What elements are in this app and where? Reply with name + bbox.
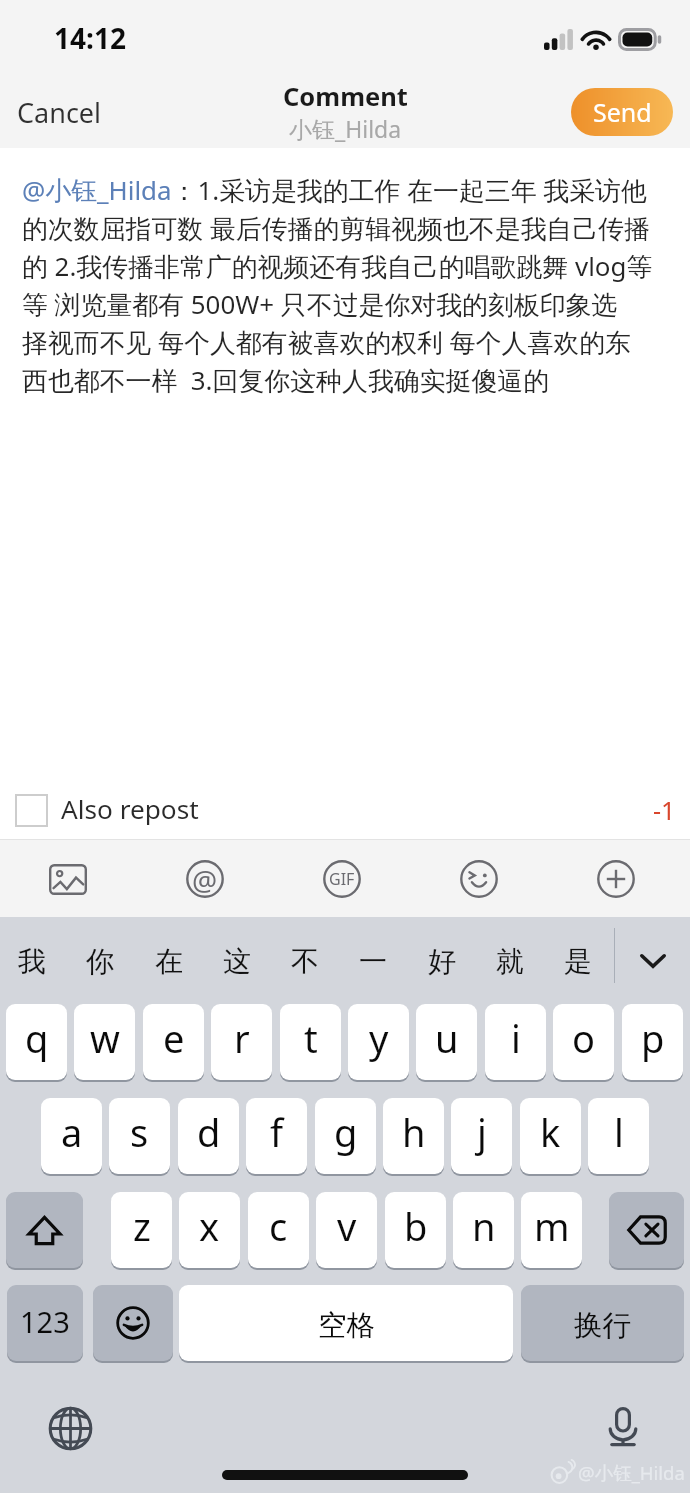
button[interactable]: 我 [4, 917, 59, 1004]
button[interactable]: 123 [7, 1285, 83, 1361]
button[interactable]: u [416, 1004, 477, 1080]
staticText: u [435, 1012, 459, 1064]
button[interactable]: q [6, 1004, 67, 1080]
staticText: 不 [291, 944, 319, 979]
staticText: 空格 [318, 1308, 375, 1344]
staticText: a [61, 1106, 83, 1158]
other: Emoji keyboard [93, 1285, 173, 1361]
button[interactable]: p [622, 1004, 683, 1080]
button[interactable]: k [520, 1098, 581, 1174]
staticText: h [402, 1106, 426, 1158]
staticText: q [25, 1012, 49, 1064]
button[interactable]: 空格 [179, 1285, 513, 1361]
staticText: 就 [496, 944, 524, 979]
button[interactable]: i [485, 1004, 546, 1080]
button[interactable] [609, 1192, 684, 1268]
staticText: o [572, 1012, 595, 1064]
staticText: r [234, 1012, 250, 1064]
staticText: 好 [428, 944, 456, 979]
staticText: -1 [653, 793, 676, 827]
staticText: 小钰_Hilda [289, 113, 402, 144]
button[interactable]: More [580, 860, 652, 898]
button[interactable]: d [178, 1098, 239, 1174]
button[interactable]: 在 [141, 917, 196, 1004]
button[interactable]: Mention [169, 860, 241, 898]
button[interactable]: 这 [209, 917, 264, 1004]
button[interactable]: c [248, 1192, 309, 1268]
staticText: 14:12 [54, 19, 126, 57]
button[interactable]: b [385, 1192, 446, 1268]
staticText: s [130, 1106, 149, 1158]
button[interactable]: m [521, 1192, 582, 1268]
button[interactable]: l [588, 1098, 649, 1174]
staticText: e [163, 1012, 185, 1064]
button[interactable]: Also repost [0, 784, 209, 836]
staticText: Also repost [61, 791, 199, 827]
button[interactable] [93, 1285, 173, 1361]
staticText: z [133, 1200, 151, 1252]
button[interactable]: Send [571, 88, 673, 136]
staticText: g [334, 1106, 358, 1158]
button[interactable]: GIF [306, 860, 378, 898]
button[interactable] [6, 1192, 83, 1268]
staticText: @小钰_Hilda：1.采访是我的工作 在一起三年 我采访他 的次数屈指可数 最… [22, 172, 686, 397]
button[interactable]: Change keyboard [42, 1400, 98, 1456]
staticText: j [477, 1106, 487, 1158]
button[interactable]: a [41, 1098, 102, 1174]
button[interactable]: 是 [550, 917, 605, 1004]
button[interactable]: Emoji [443, 860, 515, 898]
staticText: GIF [329, 868, 355, 890]
staticText: c [269, 1200, 288, 1252]
staticText: m [534, 1200, 570, 1252]
staticText: t [304, 1012, 318, 1064]
other: Shift [6, 1192, 83, 1268]
staticText: 是 [564, 944, 592, 979]
button[interactable]: Hide keyboard [621, 917, 685, 1004]
button[interactable]: n [453, 1192, 514, 1268]
staticText: 123 [20, 1302, 70, 1341]
staticText: Comment [283, 79, 408, 114]
button[interactable]: h [383, 1098, 444, 1174]
button[interactable]: 不 [277, 917, 332, 1004]
button[interactable]: x [179, 1192, 240, 1268]
staticText: @ [192, 861, 218, 899]
staticText: 你 [86, 944, 114, 979]
other: Backspace [609, 1192, 684, 1268]
button[interactable]: j [451, 1098, 512, 1174]
button[interactable]: w [74, 1004, 135, 1080]
staticText: 一 [359, 944, 387, 979]
button[interactable]: z [111, 1192, 172, 1268]
button[interactable]: Cancel [0, 80, 120, 145]
staticText: 这 [223, 944, 251, 979]
button[interactable]: 换行 [521, 1285, 684, 1361]
staticText: y [369, 1012, 389, 1064]
button[interactable]: 你 [72, 917, 127, 1004]
staticText: w [90, 1012, 120, 1064]
button[interactable]: 一 [345, 917, 400, 1004]
staticText: 在 [155, 944, 183, 979]
staticText: 换行 [574, 1308, 631, 1344]
button[interactable]: r [211, 1004, 272, 1080]
button[interactable]: s [109, 1098, 170, 1174]
button[interactable]: Photo [32, 860, 104, 898]
staticText: d [197, 1106, 221, 1158]
button[interactable]: t [280, 1004, 341, 1080]
button[interactable]: 就 [482, 917, 537, 1004]
staticText: @小钰_Hilda [578, 1460, 685, 1485]
button[interactable]: e [143, 1004, 204, 1080]
button[interactable]: g [315, 1098, 376, 1174]
staticText: l [614, 1106, 624, 1158]
button[interactable]: 好 [414, 917, 469, 1004]
staticText: k [540, 1106, 561, 1158]
button[interactable]: f [246, 1098, 307, 1174]
staticText: x [199, 1200, 220, 1252]
button[interactable]: Voice input [595, 1399, 651, 1455]
button[interactable]: v [316, 1192, 377, 1268]
staticText: v [337, 1200, 357, 1252]
staticText: i [511, 1012, 521, 1064]
staticText: n [472, 1200, 496, 1252]
staticText: Send [593, 95, 652, 129]
button[interactable]: o [553, 1004, 614, 1080]
staticText: 我 [18, 944, 46, 979]
button[interactable]: y [348, 1004, 409, 1080]
